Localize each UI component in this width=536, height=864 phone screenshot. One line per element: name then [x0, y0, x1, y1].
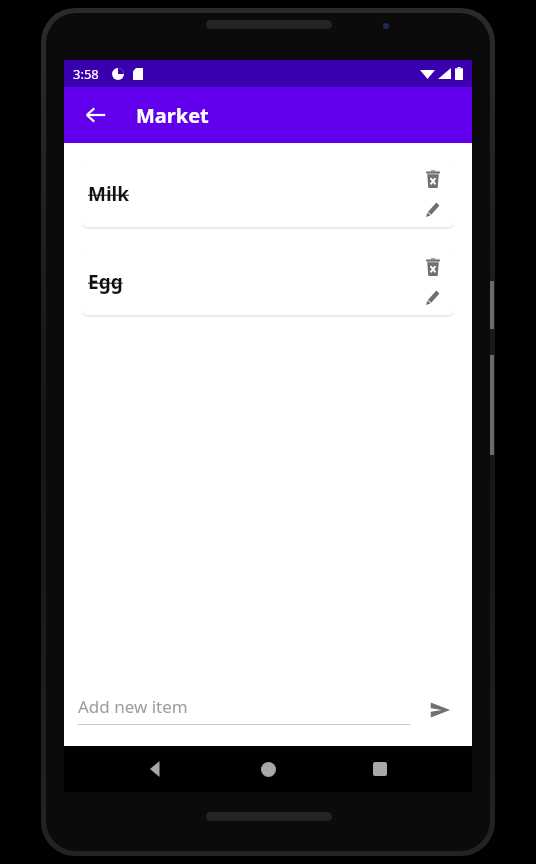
staticText: Milk: [88, 181, 420, 207]
button[interactable]: Edit Egg: [420, 284, 446, 310]
button[interactable]: Recent apps: [360, 749, 400, 789]
button[interactable]: Add new item: [78, 695, 410, 725]
button[interactable]: Delete Egg: [420, 254, 446, 280]
staticText: Market: [136, 102, 209, 129]
button[interactable]: Send: [422, 692, 458, 728]
button[interactable]: Home: [248, 749, 288, 789]
button[interactable]: Egg: [82, 249, 454, 315]
staticText: Add new item: [78, 695, 188, 718]
button[interactable]: Edit Milk: [420, 196, 446, 222]
button[interactable]: Back: [72, 91, 120, 139]
staticText: 3:58: [73, 65, 99, 83]
button[interactable]: Back: [136, 749, 176, 789]
button[interactable]: Milk: [82, 161, 454, 227]
button[interactable]: Delete Milk: [420, 166, 446, 192]
staticText: Egg: [88, 269, 420, 295]
